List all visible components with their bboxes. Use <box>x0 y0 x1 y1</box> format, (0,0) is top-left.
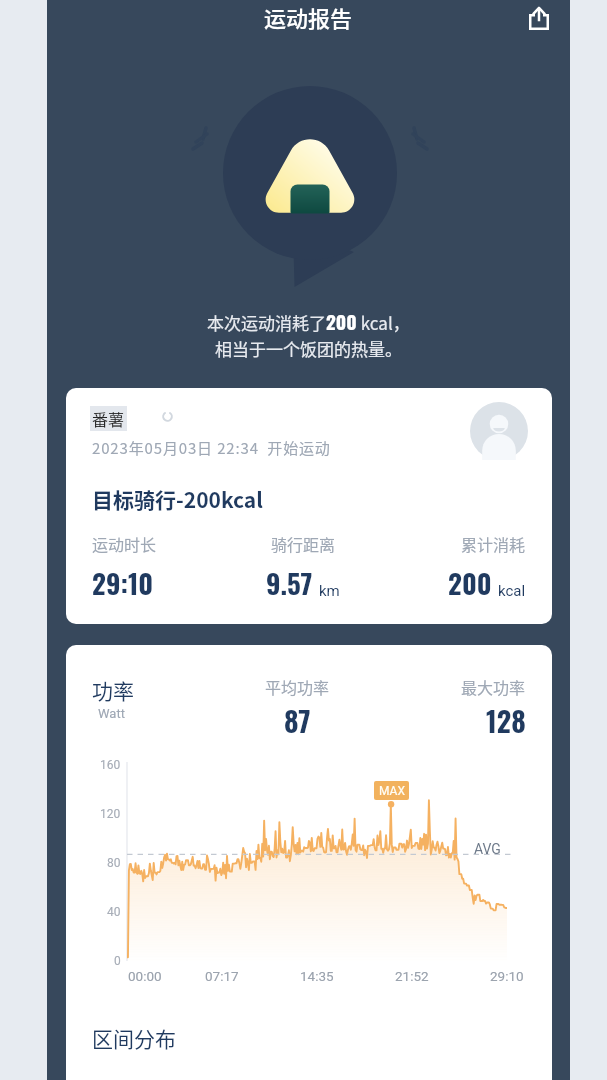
staticText: 21:52 <box>395 968 429 984</box>
staticText: 200 <box>448 563 492 603</box>
staticText: 目标骑行-200kcal <box>92 484 263 514</box>
staticText: Watt <box>98 706 125 721</box>
staticText: kcal， <box>357 310 410 335</box>
staticText: 200 <box>326 307 357 335</box>
staticText: kcal <box>498 582 526 600</box>
staticText: 80 <box>107 856 121 870</box>
staticText: AVG <box>474 841 501 857</box>
staticText: 40 <box>107 905 121 919</box>
staticText: 2023年05月03日 22:34 开始运动 <box>92 437 331 459</box>
staticText: 9.57 <box>266 563 313 603</box>
staticText: 29:10 <box>92 563 154 603</box>
staticText: 120 <box>100 807 121 821</box>
staticText: 区间分布 <box>92 1023 176 1053</box>
staticText: 相当于一个饭团的热量。 <box>215 336 402 361</box>
staticText: 骑行距离 <box>271 532 336 555</box>
staticText: 番薯 <box>92 407 125 430</box>
staticText: km <box>319 582 340 600</box>
staticText: 本次运动消耗了 <box>207 310 326 335</box>
staticText: 00:00 <box>128 968 162 984</box>
staticText: 29:10 <box>490 968 524 984</box>
staticText: 累计消耗 <box>461 532 526 555</box>
staticText: 功率 <box>92 675 134 705</box>
button[interactable]: Share <box>521 0 557 36</box>
staticText: 运动报告 <box>264 1 353 33</box>
staticText: 160 <box>100 758 121 772</box>
staticText: 0 <box>114 954 121 968</box>
button[interactable]: 番薯 <box>66 388 552 624</box>
staticText: 最大功率 <box>461 675 526 698</box>
staticText: 14:35 <box>300 968 334 984</box>
staticText: 平均功率 <box>265 675 330 698</box>
staticText: 87 <box>284 700 311 741</box>
staticText: MAX <box>379 784 405 798</box>
staticText: 运动时长 <box>92 532 157 555</box>
staticText: 07:17 <box>205 968 239 984</box>
staticText: 128 <box>486 700 526 741</box>
